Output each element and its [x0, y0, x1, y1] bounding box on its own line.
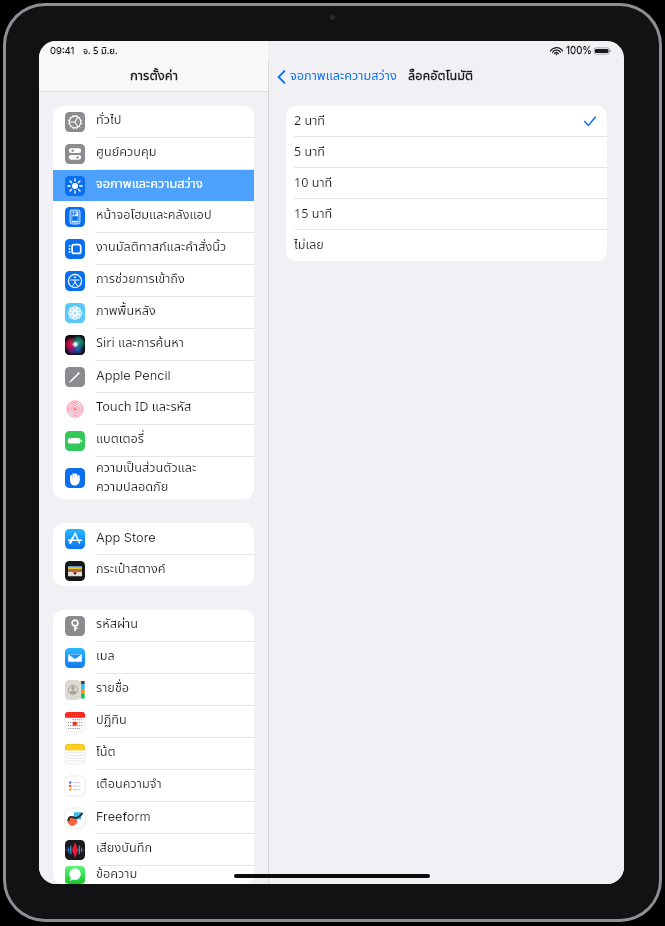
button[interactable]: ภาพพื้นหลัง [53, 297, 254, 328]
button[interactable]: จอภาพและความสว่าง [275, 63, 399, 90]
button[interactable]: Freeform [53, 802, 254, 833]
staticText: Siri และการค้นหา [96, 334, 184, 353]
button[interactable]: 10 นาที [286, 168, 607, 199]
staticText: 09:41 [50, 45, 75, 56]
staticText: App Store [96, 530, 156, 545]
button[interactable]: หน้าจอโฮมและคลังแอป [53, 201, 254, 232]
staticText: 15 นาที [294, 205, 333, 224]
button[interactable]: เสียงบันทึก [53, 834, 254, 865]
button[interactable]: เมล [53, 642, 254, 673]
button[interactable]: ข้อความ [53, 866, 254, 884]
staticText: ล็อคอัตโนมัติ [408, 67, 474, 86]
staticText: Apple Pencil [96, 368, 171, 383]
staticText: แบตเตอรี่ [96, 430, 144, 449]
staticText: 5 นาที [294, 143, 325, 162]
button[interactable]: Apple Pencil [53, 361, 254, 392]
staticText: จอภาพและความสว่าง [290, 67, 397, 86]
staticText: รหัสผ่าน [96, 615, 139, 634]
button[interactable]: ไม่เลย [286, 230, 607, 261]
staticText: การช่วยการเข้าถึง [96, 270, 185, 289]
staticText: หน้าจอโฮมและคลังแอป [96, 206, 212, 225]
button[interactable]: Siri และการค้นหา [53, 329, 254, 360]
button[interactable]: 2 นาที [286, 106, 607, 137]
staticText: จ. 5 มิ.ย. [83, 44, 118, 58]
staticText: ข้อความ [96, 865, 138, 883]
staticText: ความปลอดภัย [96, 478, 169, 497]
button[interactable]: แบตเตอรี่ [53, 425, 254, 456]
button[interactable]: รหัสผ่าน [53, 610, 254, 641]
button[interactable]: 15 นาที [286, 199, 607, 230]
button[interactable]: ปฏิทิน [53, 706, 254, 737]
staticText: ภาพพื้นหลัง [96, 302, 156, 321]
staticText: Touch ID และรหัส [96, 398, 192, 417]
staticText: เตือนความจำ [96, 775, 162, 794]
staticText: ไม่เลย [294, 236, 324, 255]
staticText: รายชื่อ [96, 679, 130, 698]
staticText: 2 นาที [294, 112, 325, 131]
button[interactable]: Touch ID และรหัส [53, 393, 254, 424]
staticText: จอภาพและความสว่าง [96, 175, 203, 194]
staticText: Freeform [96, 809, 151, 824]
staticText: โน้ต [96, 743, 116, 762]
staticText: ความเป็นส่วนตัวและ [96, 459, 197, 478]
staticText: ทั่วไป [96, 111, 122, 130]
staticText: 10 นาที [294, 174, 333, 193]
staticText: 100% [566, 45, 592, 57]
button[interactable]: โน้ต [53, 738, 254, 769]
button[interactable]: App Store [53, 523, 254, 554]
staticText: กระเป๋าสตางค์ [96, 560, 166, 579]
button[interactable]: ศูนย์ควบคุม [53, 138, 254, 169]
button[interactable]: การช่วยการเข้าถึง [53, 265, 254, 296]
staticText: การตั้งค่า [130, 66, 178, 86]
button[interactable]: เตือนความจำ [53, 770, 254, 801]
staticText: ศูนย์ควบคุม [96, 143, 157, 162]
button[interactable]: ทั่วไป [53, 106, 254, 137]
staticText: ปฏิทิน [96, 711, 127, 730]
button[interactable]: 5 นาที [286, 137, 607, 168]
button[interactable]: รายชื่อ [53, 674, 254, 705]
staticText: งานมัลติทาสก์และคำสั่งนิ้ว [96, 238, 227, 257]
staticText: เมล [96, 647, 115, 666]
button[interactable]: ความเป็นส่วนตัวและ [53, 457, 254, 499]
button[interactable]: จอภาพและความสว่าง [53, 170, 254, 201]
button[interactable]: งานมัลติทาสก์และคำสั่งนิ้ว [53, 233, 254, 264]
staticText: เสียงบันทึก [96, 839, 153, 858]
button[interactable]: กระเป๋าสตางค์ [53, 555, 254, 586]
